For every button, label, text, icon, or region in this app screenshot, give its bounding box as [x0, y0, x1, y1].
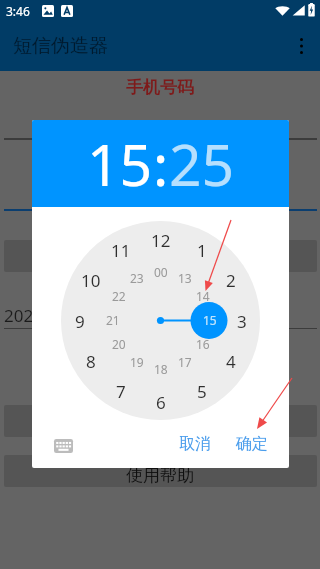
staticText: 4	[226, 350, 236, 373]
staticText: 00	[154, 264, 168, 280]
staticText: 3	[237, 310, 247, 333]
button[interactable]: More options	[282, 21, 320, 71]
staticText: 11	[111, 239, 131, 262]
staticText: 17	[178, 354, 192, 370]
staticText: 15	[203, 312, 217, 328]
button[interactable]: 15	[87, 125, 153, 203]
button[interactable]: 取消	[173, 426, 217, 462]
staticText: 16	[196, 336, 210, 352]
staticText: 8	[86, 350, 96, 373]
button[interactable]: 确定	[230, 426, 274, 462]
staticText: 短信伪造器	[13, 34, 108, 58]
staticText: 13	[178, 270, 192, 286]
staticText: 9	[75, 310, 85, 333]
staticText: 手机号码	[126, 77, 194, 98]
button[interactable]: Switch to text input	[48, 431, 78, 461]
staticText: 6	[156, 391, 166, 414]
staticText: 1	[197, 239, 207, 262]
staticText: :	[153, 125, 169, 203]
staticText: 使用帮助	[126, 465, 194, 486]
staticText: 20	[112, 336, 126, 352]
staticText: 22	[112, 288, 126, 304]
staticText: 23	[130, 270, 144, 286]
staticText: 19	[130, 354, 144, 370]
staticText: 18	[154, 361, 168, 377]
staticText: 5	[197, 380, 207, 403]
staticText: 14	[196, 288, 210, 304]
staticText: 7	[116, 380, 126, 403]
staticText: 2	[226, 269, 236, 292]
staticText: 3:46	[6, 3, 30, 19]
staticText: 2024-	[4, 304, 49, 327]
staticText: 取消	[179, 434, 211, 454]
staticText: 确定	[236, 434, 268, 454]
staticText: 12	[151, 229, 171, 252]
staticText: 21	[106, 312, 120, 328]
staticText: 10	[81, 269, 101, 292]
button[interactable]: 25	[169, 125, 235, 203]
